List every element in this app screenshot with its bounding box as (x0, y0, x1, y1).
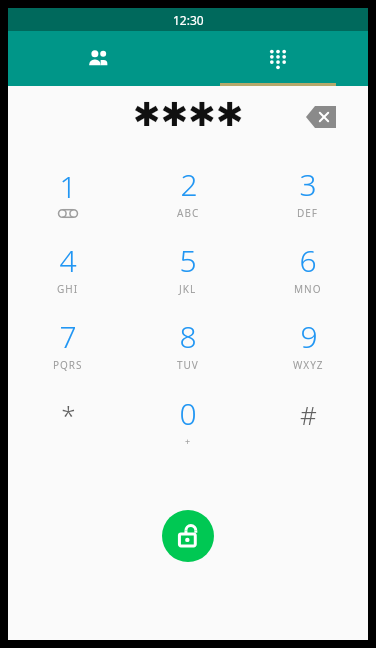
button[interactable]: * (8, 382, 128, 458)
staticText: ✱✱✱✱ (133, 95, 244, 133)
staticText: 6 (299, 240, 317, 281)
staticText: PQRS (53, 358, 83, 372)
staticText: * (61, 397, 76, 432)
button[interactable]: Backspace (304, 104, 338, 130)
staticText: 5 (179, 240, 197, 281)
button[interactable]: 3 (248, 154, 368, 230)
staticText: # (300, 397, 317, 432)
staticText: 0 (179, 393, 197, 434)
staticText: 4 (59, 240, 77, 281)
staticText: WXYZ (293, 358, 324, 372)
staticText: 9 (300, 316, 318, 357)
button[interactable]: 1 (8, 154, 128, 230)
staticText: DEF (297, 206, 319, 220)
button[interactable]: 4 (8, 230, 128, 306)
staticText: ABC (177, 206, 200, 220)
staticText: GHI (57, 282, 79, 296)
staticText: 3 (299, 164, 317, 205)
button[interactable]: 8 (128, 306, 248, 382)
staticText: 7 (59, 316, 77, 357)
staticText: 8 (179, 316, 197, 357)
button[interactable]: 6 (248, 230, 368, 306)
staticText: JKL (179, 282, 197, 296)
staticText: 1 (59, 166, 77, 207)
button[interactable]: 9 (248, 306, 368, 382)
button[interactable]: 2 (128, 154, 248, 230)
button[interactable]: Dialpad (188, 31, 368, 86)
staticText: MNO (294, 282, 322, 296)
button[interactable]: Unlock (162, 510, 214, 562)
staticText: TUV (177, 358, 199, 372)
staticText: 2 (180, 164, 198, 205)
staticText: + (185, 435, 191, 447)
button[interactable]: 0 (128, 382, 248, 458)
button[interactable]: # (248, 382, 368, 458)
button[interactable]: 5 (128, 230, 248, 306)
staticText: 12:30 (173, 12, 204, 28)
button[interactable]: 7 (8, 306, 128, 382)
button[interactable]: Contacts (8, 31, 188, 86)
